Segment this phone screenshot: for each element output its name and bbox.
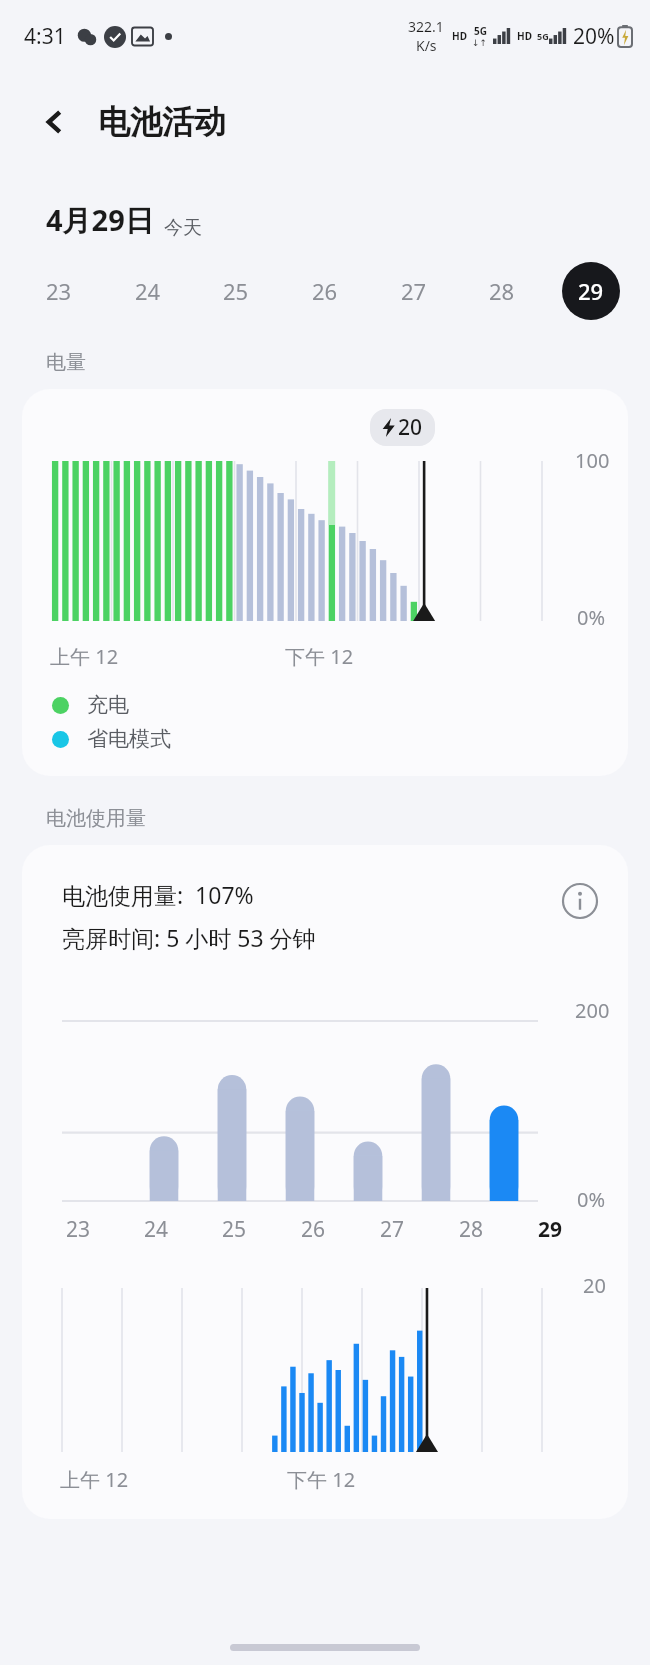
staticText: 25: [223, 276, 249, 306]
staticText: 29: [578, 276, 604, 306]
button[interactable]: Back: [30, 97, 80, 147]
staticText: 28: [459, 1215, 484, 1244]
staticText: 20%: [573, 22, 615, 51]
staticText: 上午 12: [50, 643, 119, 670]
staticText: 充电: [87, 692, 129, 718]
staticText: 下午 12: [285, 643, 354, 670]
staticText: 亮屏时间: 5 小时 53 分钟: [62, 922, 316, 953]
staticText: 上午 12: [60, 1466, 129, 1493]
staticText: 省电模式: [87, 726, 171, 752]
staticText: 4:31: [24, 22, 66, 51]
staticText: HD: [452, 29, 467, 43]
staticText: 24: [135, 276, 161, 306]
staticText: 26: [312, 276, 338, 306]
staticText: 20: [583, 1272, 606, 1299]
button[interactable]: 28: [473, 262, 531, 320]
staticText: 5G: [537, 30, 549, 42]
button[interactable]: Info: [558, 879, 602, 923]
staticText: 25: [222, 1215, 247, 1244]
staticText: 27: [380, 1215, 405, 1244]
staticText: 322.1: [408, 17, 444, 36]
staticText: K/s: [416, 36, 437, 55]
button[interactable]: 23: [30, 262, 88, 320]
staticText: 4月29日: [46, 200, 154, 240]
staticText: 27: [401, 276, 427, 306]
staticText: 200: [575, 997, 610, 1024]
staticText: 电池使用量: [46, 806, 146, 831]
staticText: 今天: [164, 216, 202, 240]
staticText: 100: [575, 447, 610, 474]
staticText: 20: [398, 413, 423, 442]
staticText: 28: [489, 276, 515, 306]
staticText: HD: [517, 29, 532, 43]
staticText: 23: [66, 1215, 91, 1244]
button[interactable]: 25: [207, 262, 265, 320]
staticText: 0%: [577, 604, 606, 631]
button[interactable]: 26: [296, 262, 354, 320]
button[interactable]: 24: [119, 262, 177, 320]
staticText: 0%: [577, 1186, 606, 1213]
staticText: 电池使用量: 107%: [62, 879, 254, 910]
staticText: ↓↑: [472, 38, 488, 48]
staticText: 电量: [46, 350, 86, 375]
staticText: 电池活动: [98, 102, 226, 142]
button[interactable]: 100: [22, 389, 628, 776]
staticText: 24: [144, 1215, 169, 1244]
staticText: 29: [538, 1215, 563, 1244]
staticText: 5G: [474, 24, 487, 38]
staticText: 下午 12: [287, 1466, 356, 1493]
staticText: 26: [301, 1215, 326, 1244]
staticText: 23: [46, 276, 72, 306]
button[interactable]: 27: [385, 262, 443, 320]
button[interactable]: 29: [562, 262, 620, 320]
